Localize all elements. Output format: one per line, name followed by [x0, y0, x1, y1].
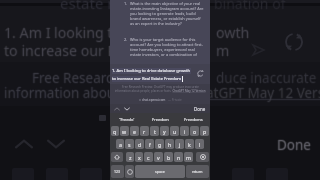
staticText: q: [113, 128, 117, 135]
staticText: chat.openai.com: [142, 98, 166, 102]
button[interactable]: x: [135, 152, 143, 162]
button[interactable]: Done: [194, 106, 206, 112]
button[interactable]: w: [120, 126, 129, 136]
staticText: Free Research Pr: [31, 69, 138, 87]
staticText: Done: [276, 136, 310, 154]
staticText: bination of: [214, 0, 286, 14]
button[interactable]: “Freedo’: [110, 113, 144, 125]
staticText: 123: [114, 169, 121, 174]
button[interactable]: y: [160, 126, 169, 136]
button[interactable]: d: [135, 139, 144, 149]
button[interactable]: m: [184, 152, 193, 162]
staticText: information about people, places or fact…: [114, 89, 172, 93]
button[interactable]: emoji: [125, 165, 134, 178]
staticText: w: [122, 128, 127, 135]
button[interactable]: h: [165, 139, 174, 149]
button[interactable]: return: [186, 165, 209, 178]
staticText: l: [199, 141, 201, 148]
button[interactable]: delete: [196, 152, 209, 162]
button[interactable]: c: [144, 152, 153, 162]
staticText: bination of: [213, 0, 285, 13]
button[interactable]: e: [130, 126, 139, 136]
button[interactable]: q: [111, 126, 119, 136]
staticText: estate r: [59, 0, 113, 13]
staticText: o: [193, 128, 197, 135]
staticText: p: [203, 128, 207, 135]
staticText: ChatGPT May 12 Version: [172, 89, 206, 93]
staticText: — Private: [168, 98, 182, 102]
staticText: f: [149, 141, 151, 148]
staticText: information about peo: [4, 85, 148, 103]
button[interactable]: b: [164, 152, 173, 162]
staticText: bination of: [214, 0, 286, 12]
staticText: b: [167, 154, 171, 161]
button[interactable]: s: [125, 139, 134, 149]
staticText: 1. Am I looking to: [4, 22, 122, 41]
button[interactable]: l: [195, 139, 204, 149]
button[interactable]: Regenerate response: [195, 68, 206, 79]
staticText: return: [192, 169, 203, 174]
staticText: Free Research Pr: [33, 69, 140, 87]
button[interactable]: space: [135, 165, 185, 178]
button[interactable]: v: [154, 152, 163, 162]
staticText: Free Research Pr: [32, 69, 139, 87]
staticText: estate r: [60, 0, 114, 12]
staticText: Done: [194, 106, 206, 112]
button[interactable]: o: [190, 126, 199, 136]
button[interactable]: Next: [123, 105, 131, 113]
staticText: duce inaccurate: [217, 69, 318, 87]
staticText: to increase our R: [4, 40, 117, 59]
staticText: space: [155, 169, 165, 174]
button[interactable]: j: [175, 139, 184, 149]
staticText: owth: [216, 24, 250, 43]
staticText: you looking to generate leads, build: [130, 11, 196, 16]
staticText: Freedoms: [184, 117, 203, 122]
staticText: t: [154, 128, 156, 135]
staticText: a: [119, 141, 122, 148]
button[interactable]: k: [185, 139, 194, 149]
button[interactable]: Freedoms: [177, 113, 210, 125]
button[interactable]: f: [145, 139, 154, 149]
button[interactable]: g: [155, 139, 164, 149]
staticText: n: [177, 154, 181, 161]
staticText: brand awareness, or establish yourself: [130, 16, 201, 21]
button[interactable]: shift: [111, 152, 123, 162]
staticText: 1.: [124, 1, 128, 6]
button[interactable]: a: [116, 139, 124, 149]
button[interactable]: r: [140, 126, 149, 136]
staticText: u: [173, 128, 177, 135]
staticText: Free Research Preview. ChatGPT may produ…: [122, 85, 199, 89]
staticText: y: [163, 128, 166, 135]
button[interactable]: z: [126, 152, 134, 162]
staticText: to increase our R: [4, 42, 117, 61]
staticText: 1. Am I looking to: [4, 23, 122, 42]
staticText: d: [138, 141, 142, 148]
button[interactable]: n: [174, 152, 183, 162]
staticText: to increase our R: [4, 41, 117, 60]
button[interactable]: Previous: [113, 105, 121, 113]
button[interactable]: 123: [111, 165, 124, 178]
staticText: owth: [215, 23, 249, 42]
staticText: estate investors, or a combination of: [130, 52, 197, 57]
button[interactable]: u: [170, 126, 179, 136]
button[interactable]: p: [200, 126, 209, 136]
staticText: i: [184, 128, 186, 135]
staticText: s: [128, 141, 131, 148]
staticText: j: [179, 141, 181, 148]
staticText: owth: [216, 22, 250, 41]
staticText: k: [188, 141, 191, 148]
staticText: m: [217, 41, 231, 60]
staticText: m: [216, 42, 230, 61]
staticText: 1. Am I looking to drive database growth: [112, 68, 191, 74]
staticText: Who is your target audience for this: [130, 37, 196, 42]
staticText: g: [158, 141, 162, 148]
staticText: bination of: [215, 0, 287, 13]
button[interactable]: Freedom: [144, 113, 177, 125]
button[interactable]: i: [180, 126, 189, 136]
staticText: h: [168, 141, 172, 148]
staticText: Done: [277, 137, 311, 155]
button[interactable]: t: [150, 126, 159, 136]
staticText: What is the main objective of your real: [130, 1, 201, 6]
staticText: m: [216, 41, 230, 60]
staticText: Done: [277, 135, 311, 153]
